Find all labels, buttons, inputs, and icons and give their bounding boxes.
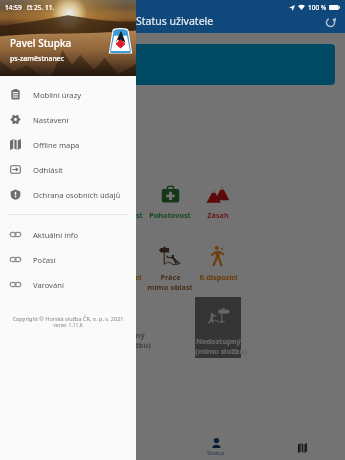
staticText: Status — [207, 449, 225, 457]
staticText: ps-zaměstnanec — [10, 54, 65, 64]
staticText: Status uživatele — [136, 14, 214, 28]
staticText: K dispozici — [199, 272, 238, 282]
button[interactable]: Offline mapa — [0, 132, 136, 157]
staticText: Nastavení — [33, 115, 69, 125]
button[interactable]: Refresh — [321, 13, 339, 31]
button[interactable]: Pohotovost — [99, 177, 145, 227]
staticText: Copyright © Horská služba ČR, o. p. s. 2… — [0, 315, 136, 322]
button[interactable]: Práce — [147, 239, 193, 289]
staticText: Offline mapa — [33, 140, 80, 150]
button[interactable]: K dispozici — [195, 239, 241, 289]
button[interactable]: Aktuální info — [0, 222, 136, 247]
button[interactable]: Počasí — [0, 247, 136, 272]
button[interactable]: Ochrana osobních údajů — [0, 182, 136, 207]
button[interactable]: Zásah — [195, 177, 241, 227]
staticText: Mobilní úrazy — [33, 90, 82, 100]
staticText: Odhlásit — [33, 165, 63, 175]
staticText: Počasí — [33, 255, 56, 265]
button[interactable]: Status — [173, 435, 259, 460]
staticText: 14:59 čt 25. 11. — [5, 3, 55, 12]
button[interactable]: Mobilní úrazy — [0, 82, 136, 107]
staticText: Pohotovost — [149, 210, 191, 220]
button[interactable]: K dispozici — [99, 239, 145, 289]
button[interactable] — [0, 44, 335, 85]
button[interactable]: Nedostupný — [195, 297, 241, 358]
staticText: mimo oblast — [147, 282, 193, 289]
staticText: Práce — [160, 272, 181, 282]
button[interactable]: Alerts — [87, 435, 173, 460]
button[interactable]: Odhlásit — [0, 157, 136, 182]
staticText: Varování — [33, 280, 64, 290]
staticText: K dispozici — [103, 272, 142, 282]
staticText: Nedostupný — [196, 336, 241, 346]
staticText: Aktuální info — [33, 230, 79, 240]
button[interactable]: Varování — [0, 272, 136, 297]
staticText: (mimo službu) — [99, 340, 145, 347]
button[interactable]: Nastavení — [0, 107, 136, 132]
staticText: Zásah — [207, 210, 229, 220]
staticText: 100 % — [308, 3, 327, 12]
staticText: Nedostupný — [100, 330, 145, 340]
staticText: Pohotovost — [101, 210, 143, 220]
staticText: Ochrana osobních údajů — [33, 190, 121, 200]
staticText: (mimo službu) — [195, 346, 241, 356]
button[interactable]: Nedostupný — [99, 297, 145, 347]
staticText: Pavel Stupka — [10, 36, 72, 50]
staticText: verze: 1.11.6 — [0, 322, 136, 329]
button[interactable]: Pohotovost — [147, 177, 193, 227]
button[interactable]: Map — [259, 435, 345, 460]
